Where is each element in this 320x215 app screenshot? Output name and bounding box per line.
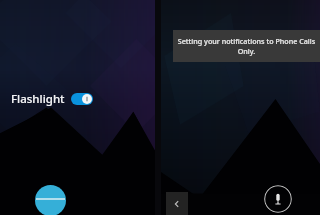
staticText: Setting your notifications to Phone Call… bbox=[177, 36, 316, 56]
button[interactable]: Voice search bbox=[264, 185, 292, 213]
staticText: Flashlight bbox=[11, 91, 65, 107]
button[interactable]: Flashlight app bbox=[35, 185, 66, 215]
button[interactable]: Setting your notifications to Phone Call… bbox=[173, 30, 320, 62]
button[interactable]: Flashlight bbox=[10, 89, 94, 109]
button[interactable]: Back bbox=[166, 192, 188, 215]
